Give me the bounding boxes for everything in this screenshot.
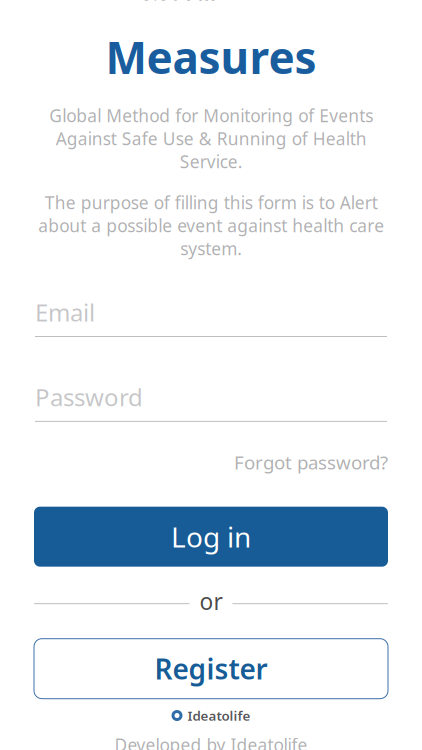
staticText: Measures: [105, 28, 316, 86]
staticText: Email: [35, 296, 95, 328]
button[interactable]: Register: [34, 639, 388, 699]
staticText: The purpose of filling this form is to A…: [38, 191, 384, 260]
staticText: Log in: [171, 518, 251, 555]
staticText: Password: [35, 381, 143, 413]
button[interactable]: Log in: [34, 507, 388, 567]
staticText: 5:56 PM: [141, 0, 216, 6]
button[interactable]: Forgot password?: [234, 444, 388, 481]
staticText: Ideatolife: [187, 707, 250, 724]
staticText: or: [199, 586, 222, 616]
staticText: Forgot password?: [234, 450, 388, 475]
staticText: Developed by Ideatolife: [114, 733, 307, 750]
staticText: Register: [154, 650, 267, 687]
staticText: Global Method for Monitoring of Events A…: [49, 104, 373, 173]
